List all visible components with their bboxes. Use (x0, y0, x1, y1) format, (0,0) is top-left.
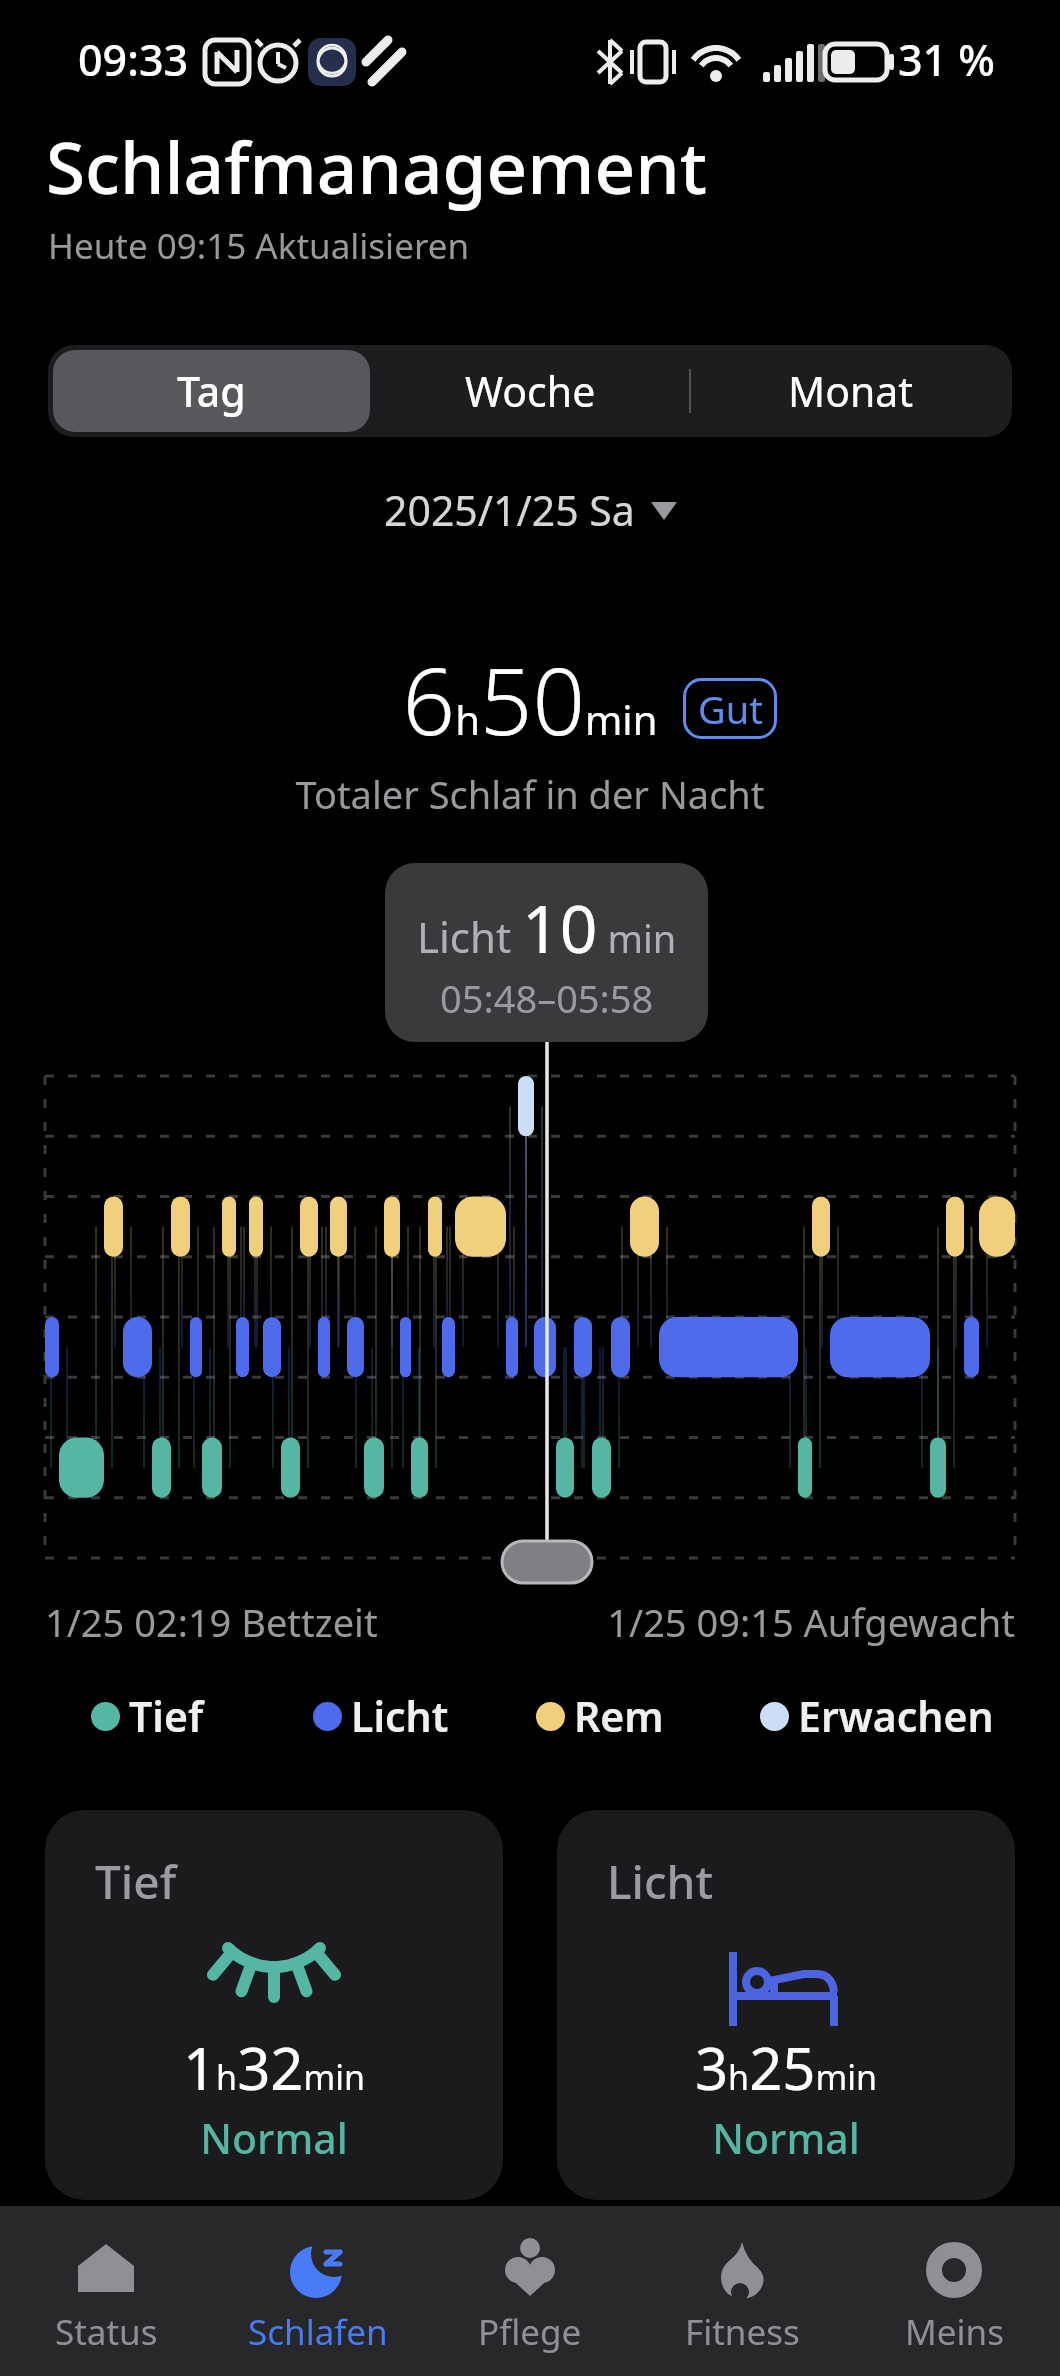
staticText: Pflege (478, 2308, 582, 2356)
staticText: Gut (698, 683, 763, 735)
button[interactable]: Gut (683, 678, 777, 739)
staticText: 1h32min (45, 2028, 503, 2107)
staticText: Totaler Schlaf in der Nacht (0, 768, 1060, 820)
staticText: 6h50min (0, 637, 1060, 762)
staticText: Fitness (685, 2308, 800, 2356)
staticText: Monat (788, 363, 914, 419)
button[interactable]: Monat (690, 345, 1012, 437)
staticText: Licht 10 min (417, 882, 677, 972)
staticText: Tag (177, 363, 246, 419)
button[interactable]: Pflege (424, 2206, 636, 2376)
button[interactable]: Meins (848, 2206, 1060, 2376)
button[interactable]: Woche (370, 345, 690, 437)
staticText: Tief (129, 1688, 204, 1744)
button[interactable]: 2025/1/25 Sa (384, 482, 677, 538)
button[interactable]: Status (0, 2206, 212, 2376)
staticText: Normal (557, 2110, 1015, 2166)
staticText: 2025/1/25 Sa (384, 482, 635, 538)
staticText: Tief (95, 1850, 177, 1913)
staticText: Meins (905, 2308, 1004, 2356)
button[interactable]: Fitness (636, 2206, 848, 2376)
staticText: Status (55, 2308, 158, 2356)
button[interactable]: Heute 09:15 Aktualisieren (48, 222, 470, 270)
staticText: Rem (574, 1688, 664, 1744)
staticText: Schlafmanagement (46, 118, 708, 215)
staticText: 31 % (898, 30, 996, 89)
staticText: 1/25 02:19 Bettzeit (45, 1596, 378, 1648)
staticText: 3h25min (557, 2028, 1015, 2107)
staticText: Normal (45, 2110, 503, 2166)
staticText: Schlafen (248, 2308, 388, 2356)
button[interactable]: Tag (53, 350, 370, 432)
staticText: Woche (465, 363, 596, 419)
staticText: 1/25 09:15 Aufgewacht (0, 1596, 1015, 1648)
staticText: 09:33 (78, 30, 189, 89)
button[interactable]: Tief (45, 1810, 503, 2200)
staticText: Licht (607, 1850, 714, 1913)
staticText: Licht (351, 1688, 449, 1744)
button[interactable]: Licht (557, 1810, 1015, 2200)
staticText: 05:48–05:58 (440, 972, 654, 1024)
button[interactable]: Schlafen (212, 2206, 424, 2376)
staticText: Erwachen (798, 1688, 994, 1744)
